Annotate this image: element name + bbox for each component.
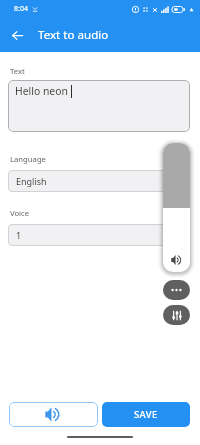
- button[interactable]: Sound settings: [163, 305, 190, 325]
- button[interactable]: Back: [0, 18, 34, 52]
- staticText: 8:04: [14, 4, 28, 14]
- button[interactable]: SAVE: [102, 402, 190, 427]
- button[interactable]: More options: [163, 280, 190, 300]
- button[interactable]: Volume: [163, 143, 190, 272]
- staticText: 1: [16, 229, 22, 241]
- staticText: Voice: [10, 208, 30, 218]
- button[interactable]: Play: [9, 402, 98, 427]
- staticText: English: [16, 175, 47, 187]
- button[interactable]: Hello neon: [8, 80, 190, 132]
- staticText: SAVE: [134, 408, 158, 421]
- staticText: Text: [10, 66, 25, 76]
- staticText: Text to audio: [38, 27, 109, 43]
- button[interactable]: 1: [8, 224, 190, 246]
- staticText: Language: [10, 154, 46, 164]
- button[interactable]: English: [8, 170, 190, 192]
- staticText: Hello neon: [15, 84, 68, 98]
